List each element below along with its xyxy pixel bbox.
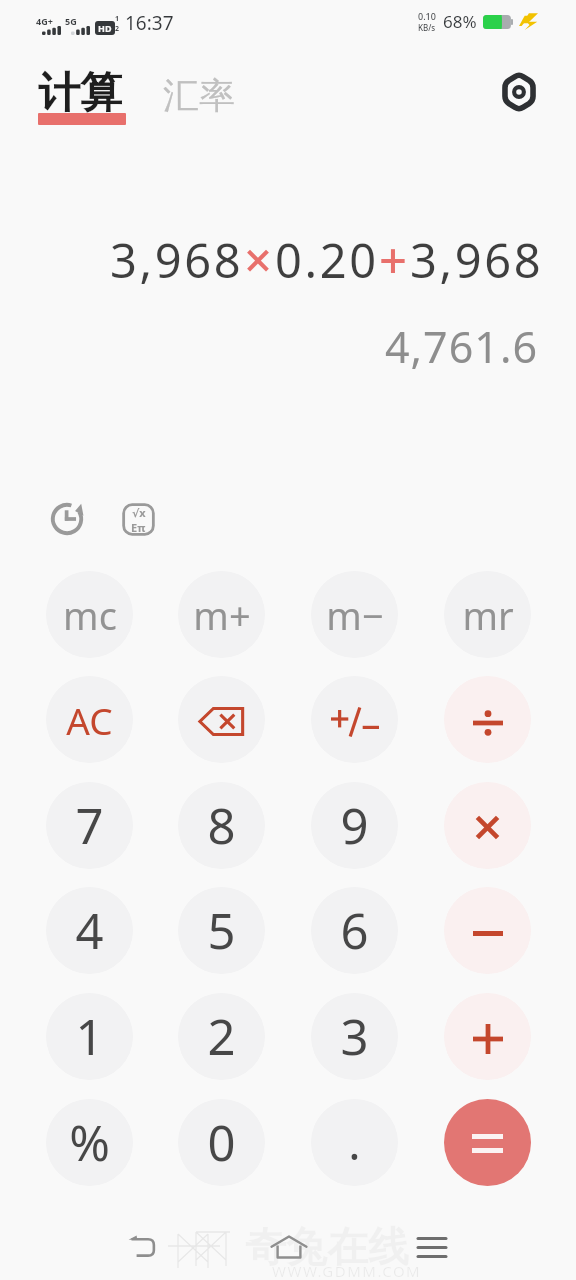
staticText: 4,761.6 [385, 317, 539, 376]
button[interactable]: Recent apps [406, 1221, 458, 1273]
button[interactable]: 0 [178, 1099, 265, 1186]
button[interactable]: mr [444, 571, 531, 658]
staticText: KB/s [418, 22, 436, 33]
button[interactable]: 8 [178, 782, 265, 869]
staticText: 68% [443, 10, 477, 33]
staticText: 16:37 [125, 10, 174, 36]
button[interactable]: Home [263, 1221, 315, 1273]
button[interactable]: . [311, 1099, 398, 1186]
staticText: 1 [115, 14, 120, 24]
button[interactable]: Equals [444, 1099, 531, 1186]
button[interactable]: 4 [46, 887, 133, 974]
staticText: 0.20 [275, 228, 379, 292]
button[interactable]: 计算 [38, 60, 126, 132]
staticText: 4G+ [36, 15, 53, 27]
button[interactable]: mc [46, 571, 133, 658]
button[interactable]: Minus [444, 887, 531, 974]
button[interactable]: Divide [444, 676, 531, 763]
staticText: 4 [75, 897, 104, 964]
button[interactable]: History [43, 495, 91, 543]
button[interactable]: 7 [46, 782, 133, 869]
staticText: AC [66, 695, 113, 745]
staticText: 0 [207, 1109, 236, 1176]
button[interactable]: 3 [311, 993, 398, 1080]
staticText: m− [326, 589, 384, 641]
staticText: Eπ [131, 520, 146, 535]
staticText: 5G [65, 15, 77, 27]
staticText: + [379, 226, 410, 293]
button[interactable]: Multiply [444, 782, 531, 869]
staticText: 8 [207, 792, 236, 859]
staticText: HD [98, 22, 112, 34]
button[interactable]: m− [311, 571, 398, 658]
staticText: WWW.GDMM.COM [272, 1261, 422, 1280]
button[interactable]: AC [46, 676, 133, 763]
staticText: 奇兔在线 [245, 1222, 409, 1274]
staticText: % [69, 1109, 110, 1176]
button[interactable]: Back [117, 1221, 169, 1273]
staticText: 1 [75, 1003, 104, 1070]
staticText: 2 [207, 1003, 236, 1070]
staticText: 6 [340, 897, 369, 964]
staticText: . [348, 1111, 361, 1174]
button[interactable]: Delete [178, 676, 265, 763]
staticText: 3 [340, 1003, 369, 1070]
button[interactable]: 2 [178, 993, 265, 1080]
button[interactable] [311, 676, 398, 763]
button[interactable]: 1 [46, 993, 133, 1080]
staticText: 9 [340, 792, 369, 859]
staticText: mr [462, 589, 514, 641]
button[interactable]: m+ [178, 571, 265, 658]
staticText: 3,968 [410, 228, 544, 292]
button[interactable]: % [46, 1099, 133, 1186]
button[interactable]: 5 [178, 887, 265, 974]
button[interactable]: Scientific mode [114, 495, 162, 543]
button[interactable]: 汇率 [163, 73, 235, 118]
button[interactable]: 6 [311, 887, 398, 974]
button[interactable]: 9 [311, 782, 398, 869]
staticText: 2 [115, 24, 120, 34]
staticText: 3,968 [110, 228, 244, 292]
staticText: 5 [207, 897, 236, 964]
staticText: 7 [75, 792, 104, 859]
button[interactable]: Plus [444, 993, 531, 1080]
staticText: m+ [193, 589, 251, 641]
staticText: 0.10 [418, 10, 436, 22]
staticText: × [244, 226, 275, 293]
button[interactable]: Settings [495, 68, 543, 116]
staticText: 计算 [38, 67, 122, 120]
staticText: 汇率 [163, 73, 235, 118]
staticText: √x [132, 505, 146, 520]
staticText: mc [63, 589, 117, 641]
